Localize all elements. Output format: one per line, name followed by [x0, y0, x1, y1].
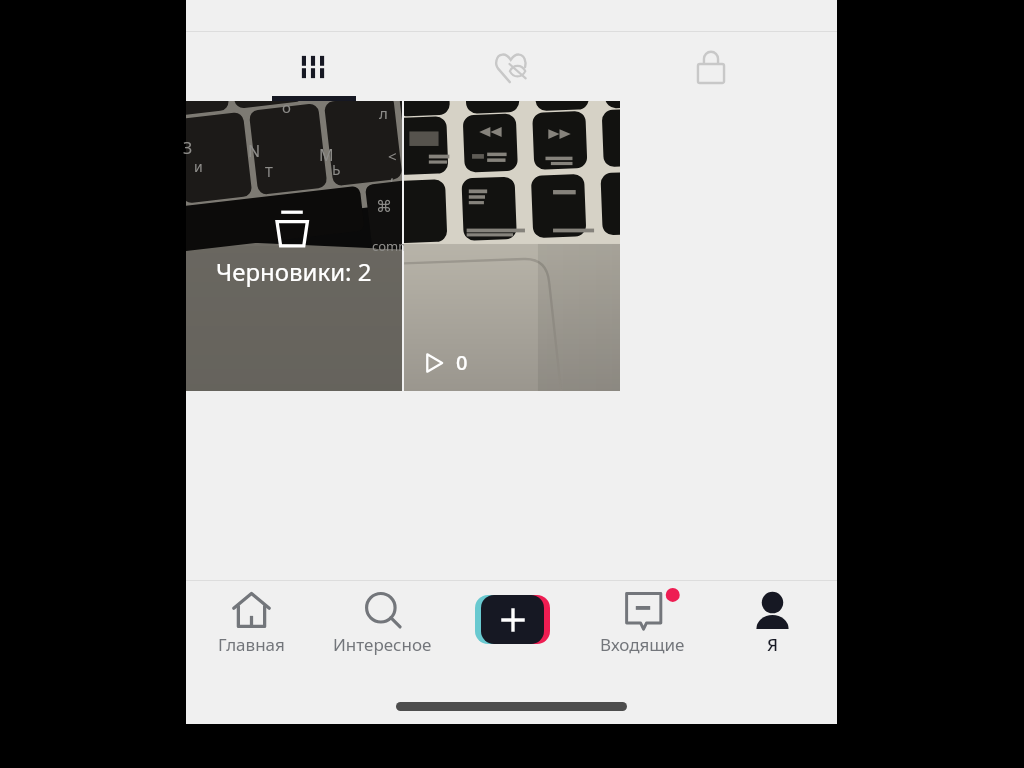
staticText: Т	[265, 162, 273, 181]
staticText: Я	[767, 633, 779, 656]
staticText: N	[248, 140, 261, 162]
staticText: Интересное	[333, 633, 432, 656]
staticText: М	[319, 144, 334, 166]
button[interactable]: Интересное	[317, 581, 447, 662]
button[interactable]: 0	[404, 101, 620, 391]
staticText: З	[183, 137, 193, 159]
staticText: comm	[372, 237, 411, 255]
staticText: и	[194, 157, 203, 176]
button[interactable]: Create	[447, 581, 577, 662]
staticText: л	[379, 103, 388, 123]
button[interactable]: Private	[611, 32, 810, 101]
staticText: <	[388, 146, 397, 166]
staticText: ⌘	[376, 197, 392, 216]
staticText: Ь	[332, 160, 341, 179]
button[interactable]: Videos	[213, 32, 412, 101]
staticText: Главная	[218, 633, 285, 656]
staticText: Входящие	[600, 633, 685, 656]
button[interactable]: Hidden likes	[412, 32, 611, 101]
staticText: 0	[456, 349, 468, 376]
button[interactable]: Входящие	[577, 581, 707, 662]
button[interactable]: о	[186, 101, 402, 391]
staticText: ,	[390, 164, 395, 184]
button[interactable]: Я	[707, 581, 837, 662]
staticText: Черновики: 2	[216, 255, 372, 288]
button[interactable]: Главная	[186, 581, 317, 662]
staticText: о	[282, 97, 291, 117]
